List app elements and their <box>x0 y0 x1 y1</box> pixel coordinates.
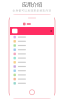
button[interactable] <box>10 73 54 77</box>
button[interactable] <box>10 52 54 56</box>
button[interactable] <box>10 64 54 69</box>
button[interactable] <box>10 35 54 39</box>
button[interactable] <box>10 39 54 43</box>
staticText: 应用介绍 <box>22 1 42 8</box>
button[interactable] <box>10 43 54 48</box>
button[interactable] <box>10 69 54 73</box>
button[interactable] <box>10 56 54 60</box>
button[interactable] <box>10 77 54 81</box>
button[interactable] <box>10 81 54 85</box>
button[interactable] <box>10 60 54 64</box>
staticText: 全身都可以发现更多精彩内容 <box>12 9 51 12</box>
button[interactable] <box>10 48 54 52</box>
